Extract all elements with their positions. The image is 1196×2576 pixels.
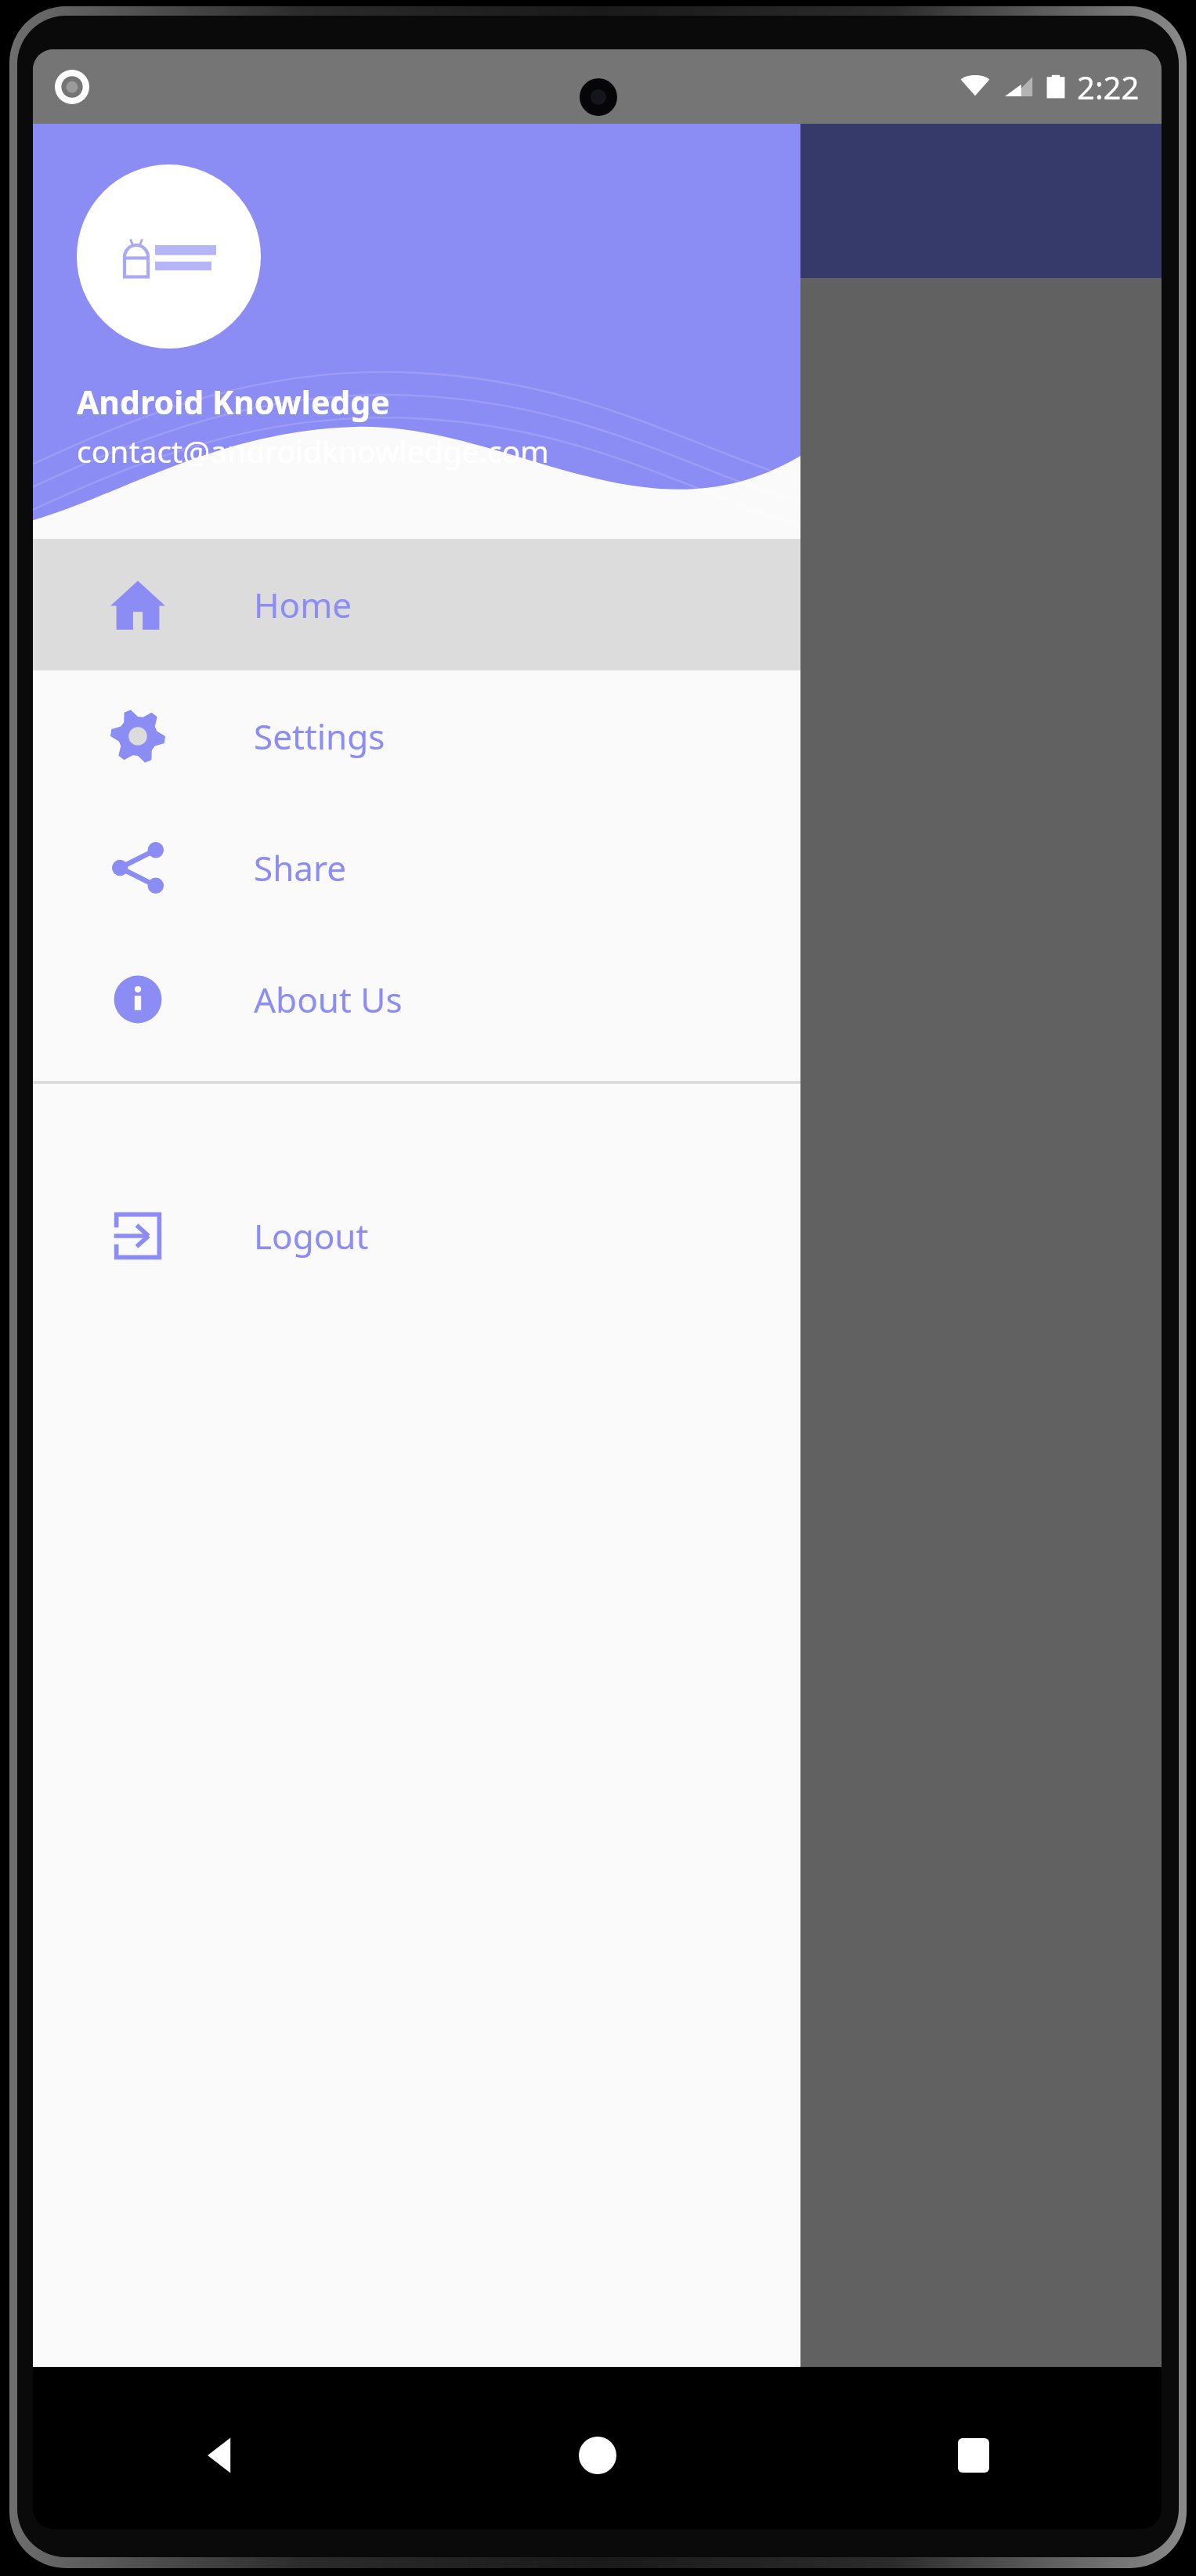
button[interactable]: About Us (33, 934, 800, 1065)
button[interactable]: Logout (33, 1170, 800, 1302)
staticText: Logout (254, 1212, 369, 1259)
staticText: Home (254, 581, 352, 628)
button[interactable]: Recent apps (786, 2404, 1162, 2507)
staticText: Share (254, 844, 347, 891)
staticText: Android Knowledge (77, 380, 390, 424)
button[interactable]: Back (33, 2404, 410, 2507)
button[interactable]: Home (410, 2404, 786, 2507)
staticText: About Us (254, 976, 403, 1023)
button[interactable]: Share (33, 802, 800, 934)
staticText: contact@androidknowledge.com (77, 430, 549, 471)
button[interactable]: Settings (33, 670, 800, 802)
button[interactable]: Home (33, 539, 800, 670)
staticText: Settings (254, 713, 385, 760)
staticText: 2:22 (1077, 66, 1140, 108)
